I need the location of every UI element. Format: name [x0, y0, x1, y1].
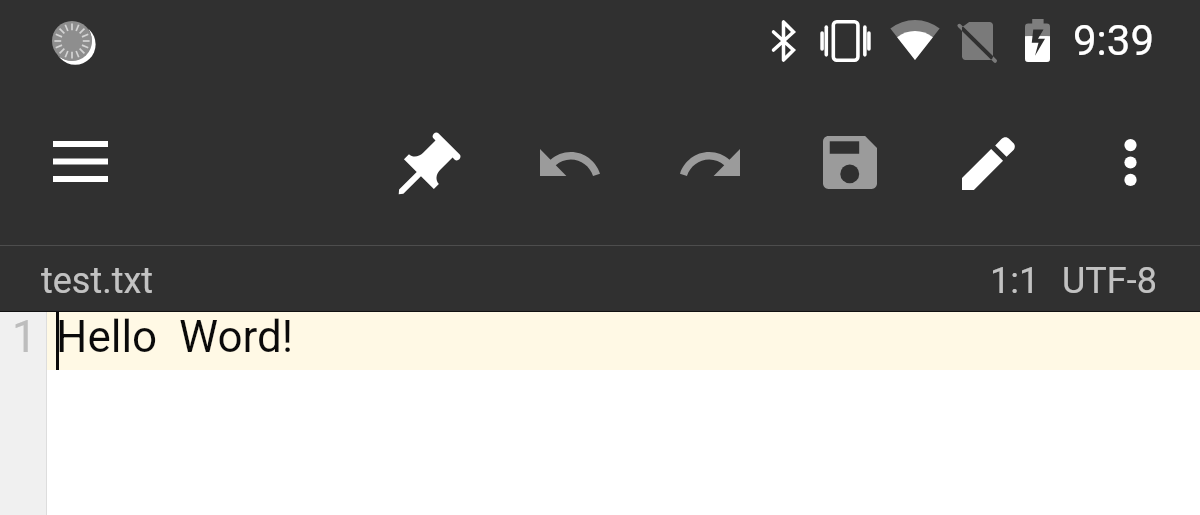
staticText: test.txt — [41, 260, 154, 302]
button[interactable]: Edit — [931, 93, 1047, 232]
staticText: Hello Word! — [56, 311, 294, 363]
staticText: 9:39 — [1073, 16, 1154, 65]
button[interactable]: Redo — [652, 93, 768, 232]
button[interactable]: Menu — [28, 111, 132, 211]
button[interactable]: Pin — [371, 93, 487, 232]
button[interactable]: More options — [1072, 93, 1188, 232]
staticText: 1 — [12, 311, 37, 363]
button[interactable]: Save — [792, 93, 908, 232]
button[interactable]: Undo — [512, 93, 628, 232]
staticText: 1:1 — [990, 260, 1040, 302]
staticText: UTF-8 — [1062, 260, 1157, 302]
